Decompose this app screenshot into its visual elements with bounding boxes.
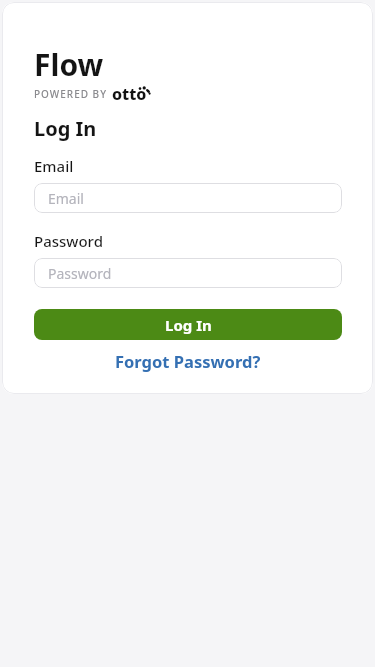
- staticText: Log In: [34, 115, 97, 142]
- staticText: Forgot Password?: [115, 350, 261, 372]
- staticText: Flow: [34, 44, 104, 85]
- staticText: Email: [48, 189, 84, 208]
- staticText: Password: [34, 231, 103, 251]
- button[interactable]: Email: [34, 183, 342, 213]
- staticText: Password: [48, 264, 112, 283]
- button[interactable]: Log In: [34, 309, 342, 340]
- staticText: Email: [34, 156, 74, 176]
- button[interactable]: Password: [34, 258, 342, 288]
- staticText: POWERED BY: [34, 87, 107, 101]
- staticText: otto: [112, 83, 147, 105]
- staticText: Log In: [165, 315, 212, 335]
- button[interactable]: Forgot Password?: [115, 350, 261, 372]
